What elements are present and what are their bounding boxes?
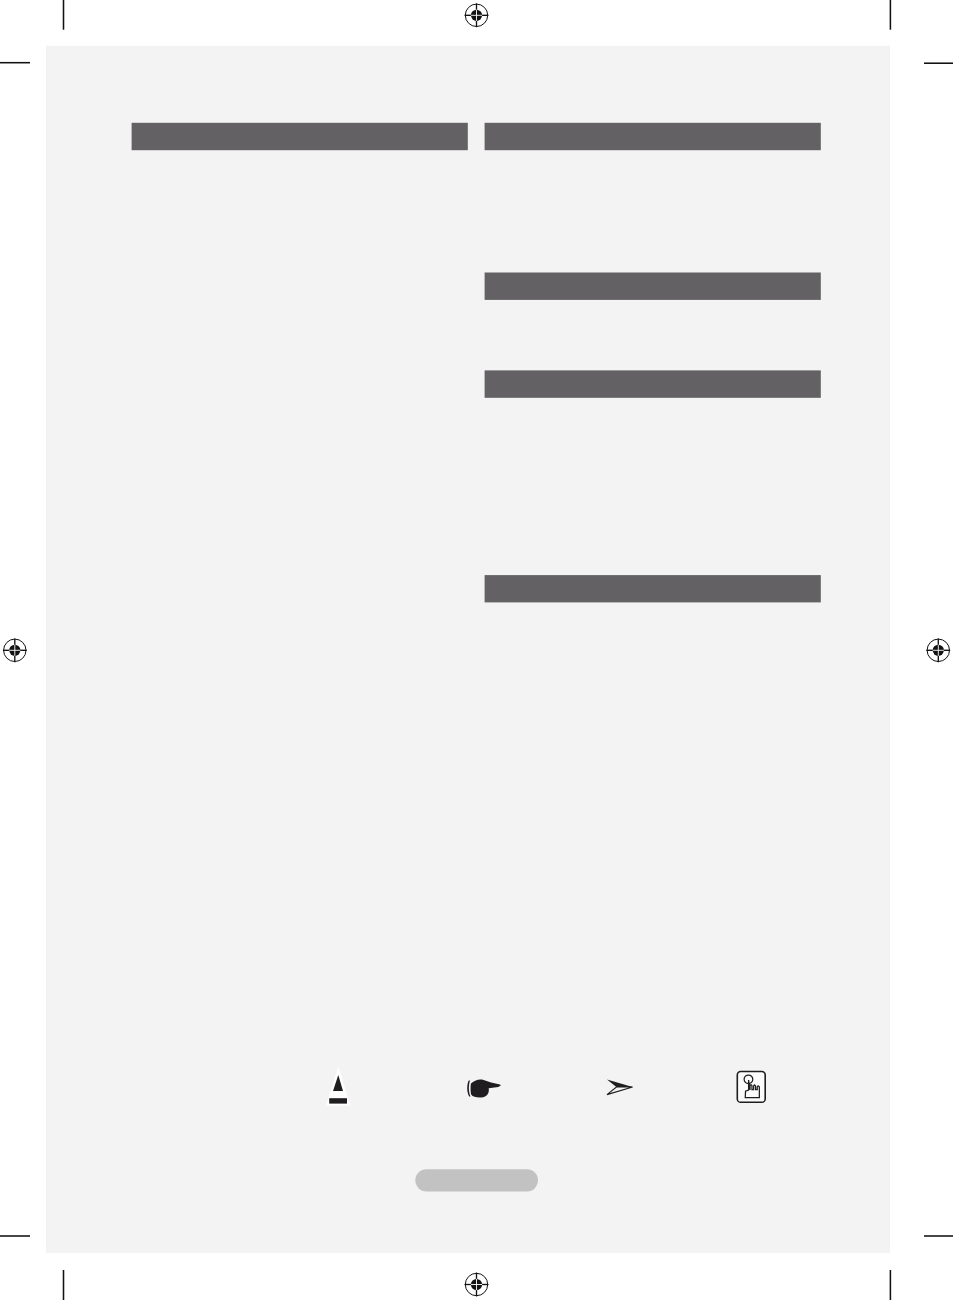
button[interactable]: Print alignment mark (322, 1063, 356, 1108)
button[interactable]: Section heading five (485, 575, 821, 602)
button[interactable]: Home indicator (415, 1169, 538, 1191)
button[interactable]: Pointing hand (464, 1072, 504, 1102)
button[interactable]: Send (604, 1074, 638, 1100)
button[interactable]: Section heading three (485, 273, 821, 300)
button[interactable]: Section heading four (485, 370, 821, 397)
button[interactable]: Touch control (735, 1069, 768, 1105)
